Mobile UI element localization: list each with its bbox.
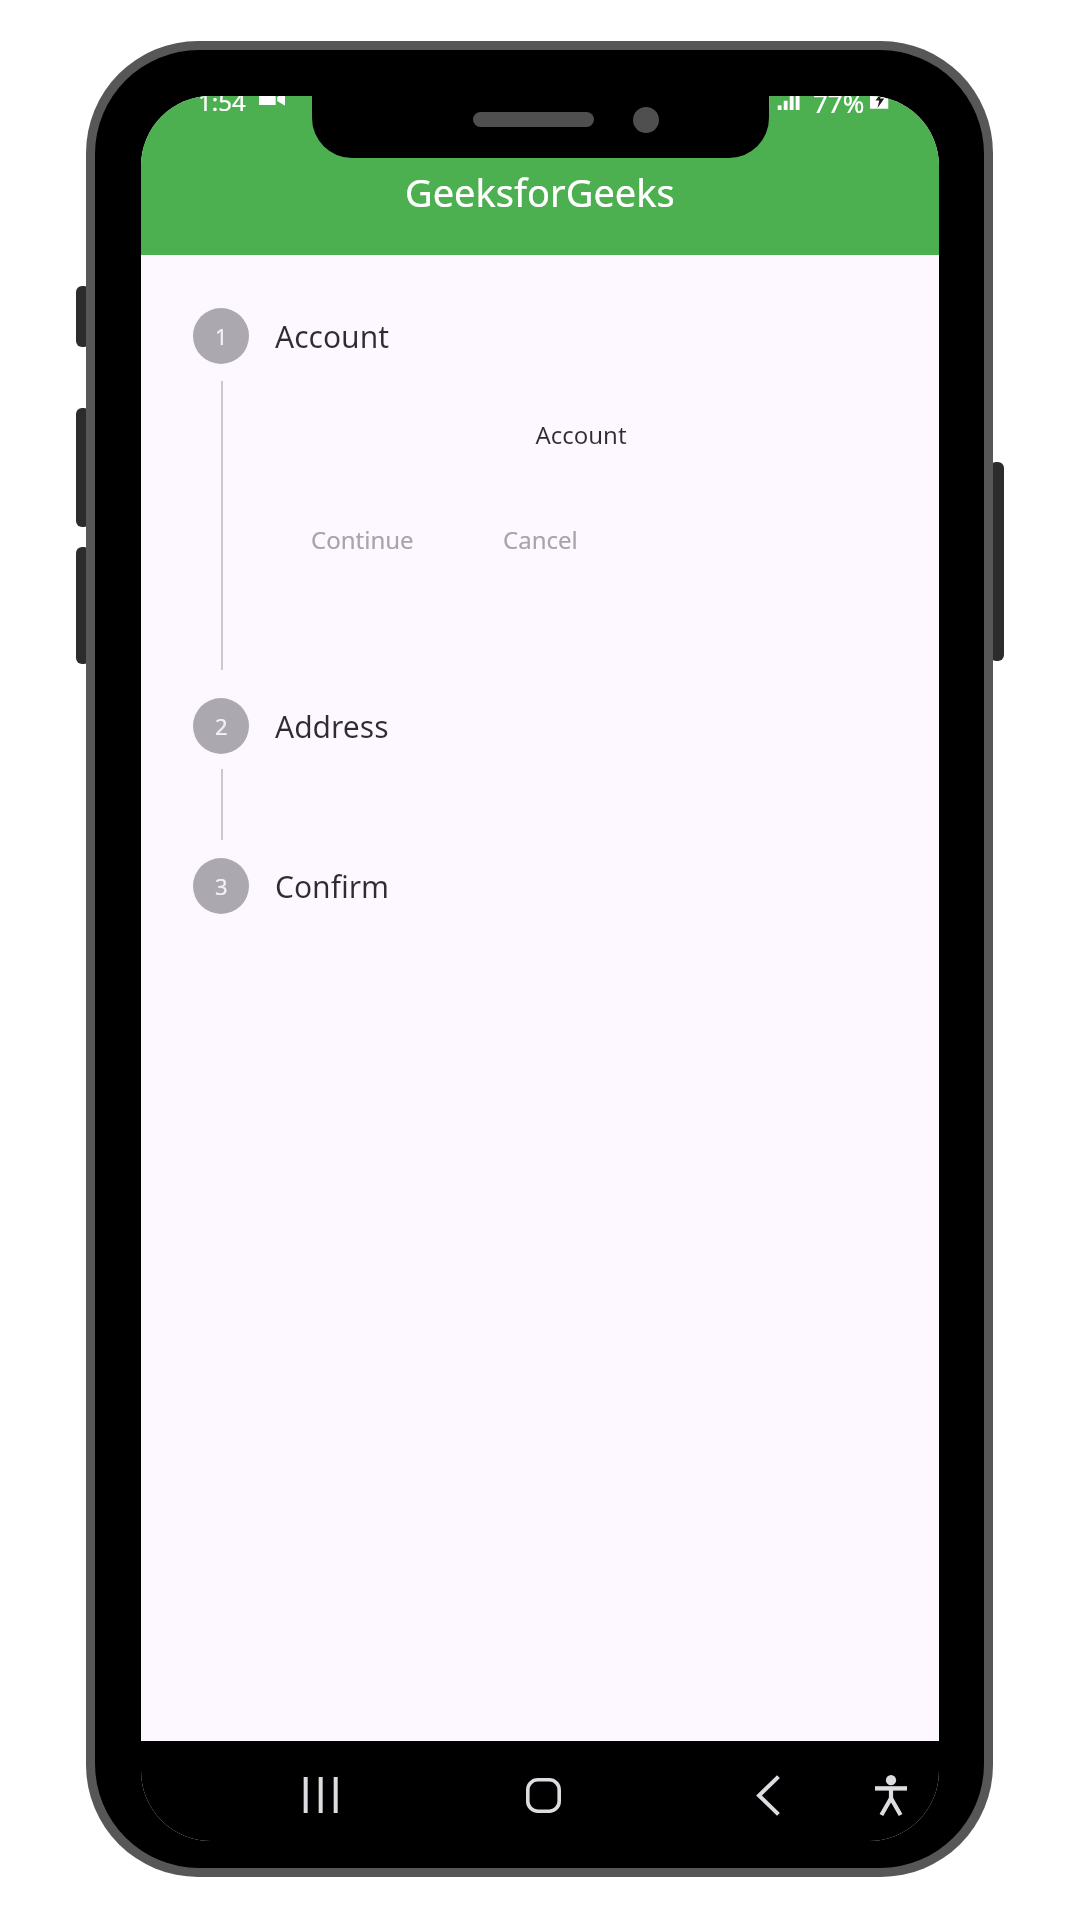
staticText: Continue xyxy=(311,523,414,556)
button[interactable]: Back xyxy=(737,1765,797,1825)
staticText: Confirm xyxy=(275,866,390,907)
staticText: Account xyxy=(481,418,681,451)
staticText: Account xyxy=(275,316,390,357)
staticText: 2 xyxy=(215,711,228,741)
button[interactable]: 1 xyxy=(193,308,390,364)
button[interactable]: Recent apps xyxy=(289,1765,349,1825)
staticText: Cancel xyxy=(503,523,578,556)
staticText: 1:54 xyxy=(198,96,246,113)
button[interactable]: Accessibility xyxy=(861,1765,921,1825)
staticText: 77% xyxy=(813,96,865,113)
staticText: GeeksforGeeks xyxy=(405,166,675,218)
staticText: 1 xyxy=(215,321,228,351)
button[interactable]: Home xyxy=(513,1765,573,1825)
button[interactable]: 3 xyxy=(193,858,390,914)
button[interactable]: Cancel xyxy=(487,505,594,574)
button[interactable]: Continue xyxy=(295,505,430,574)
staticText: Address xyxy=(275,706,389,747)
staticText: 3 xyxy=(215,871,228,901)
button[interactable]: 2 xyxy=(193,698,389,754)
